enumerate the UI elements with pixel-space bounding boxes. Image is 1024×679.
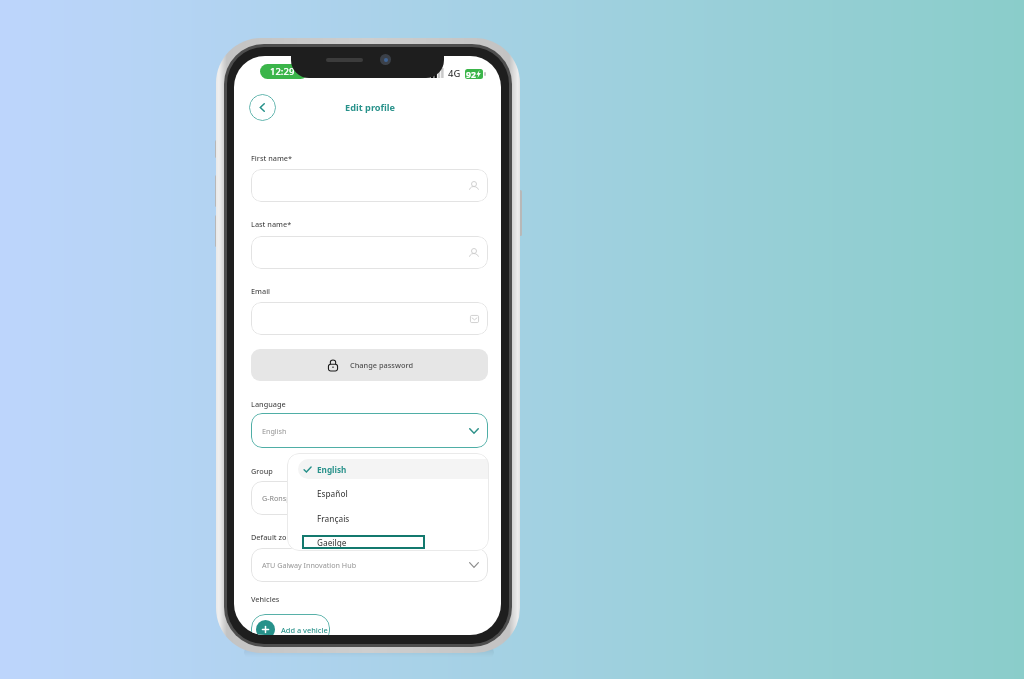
staticText: Español bbox=[317, 488, 348, 499]
button[interactable]: Change password bbox=[251, 349, 488, 381]
staticText: Français bbox=[317, 513, 350, 524]
button[interactable]: English bbox=[298, 459, 489, 479]
staticText: G-Ronsp bbox=[262, 493, 479, 503]
staticText: 12:29 bbox=[270, 65, 295, 78]
staticText: Default zone bbox=[251, 532, 296, 542]
button[interactable] bbox=[251, 169, 488, 202]
staticText: Vehicles bbox=[251, 594, 280, 604]
button[interactable]: English bbox=[251, 413, 488, 448]
staticText: Email bbox=[251, 286, 271, 296]
button[interactable]: Gaeilge bbox=[302, 535, 425, 549]
staticText: First name* bbox=[251, 153, 292, 163]
staticText: English bbox=[317, 464, 347, 475]
staticText: Last name* bbox=[251, 219, 292, 229]
staticText: Add a vehicle bbox=[281, 625, 328, 635]
staticText: Edit profile bbox=[345, 101, 396, 114]
staticText: 92 bbox=[466, 69, 476, 79]
button[interactable]: ATU Galway Innovation Hub bbox=[251, 548, 488, 582]
button[interactable]: Français bbox=[287, 506, 489, 530]
staticText: 4G bbox=[448, 67, 461, 80]
staticText: Gaeilge bbox=[317, 537, 347, 548]
button[interactable] bbox=[251, 236, 488, 269]
button[interactable]: Add a vehicle bbox=[251, 614, 330, 635]
staticText: Language bbox=[251, 399, 286, 409]
staticText: ATU Galway Innovation Hub bbox=[262, 560, 469, 570]
button[interactable]: G-Ronsp bbox=[251, 481, 488, 515]
staticText: Group bbox=[251, 466, 273, 476]
staticText: English bbox=[262, 426, 469, 436]
button[interactable]: Español bbox=[287, 481, 489, 505]
button[interactable] bbox=[251, 302, 488, 335]
staticText: Change password bbox=[350, 360, 413, 370]
button[interactable]: Back bbox=[249, 94, 276, 121]
